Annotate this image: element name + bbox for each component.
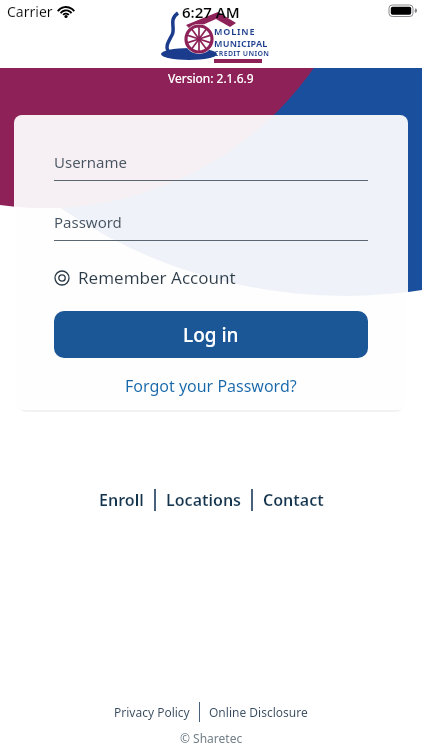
staticText: 6:27 AM (182, 2, 240, 22)
button[interactable]: Forgot your Password? (125, 375, 297, 397)
staticText: © Sharetec (180, 730, 243, 746)
button[interactable]: Online Disclosure (209, 704, 308, 720)
staticText: Version: 2.1.6.9 (168, 70, 254, 86)
staticText: CREDIT UNION (214, 49, 270, 59)
staticText: Username (54, 152, 127, 172)
staticText: Password (54, 212, 122, 232)
staticText: Log in (183, 322, 239, 348)
button[interactable]: Contact (263, 489, 324, 511)
staticText: Carrier (7, 2, 53, 21)
button[interactable]: Log in (54, 311, 368, 358)
staticText: MOLINE (214, 25, 256, 37)
button[interactable]: Enroll (99, 489, 144, 511)
button[interactable]: Remember Account (54, 266, 236, 289)
button[interactable]: Locations (166, 489, 241, 511)
staticText: MUNICIPAL (214, 37, 268, 49)
staticText: Remember Account (78, 266, 236, 289)
button[interactable]: Privacy Policy (114, 704, 190, 720)
